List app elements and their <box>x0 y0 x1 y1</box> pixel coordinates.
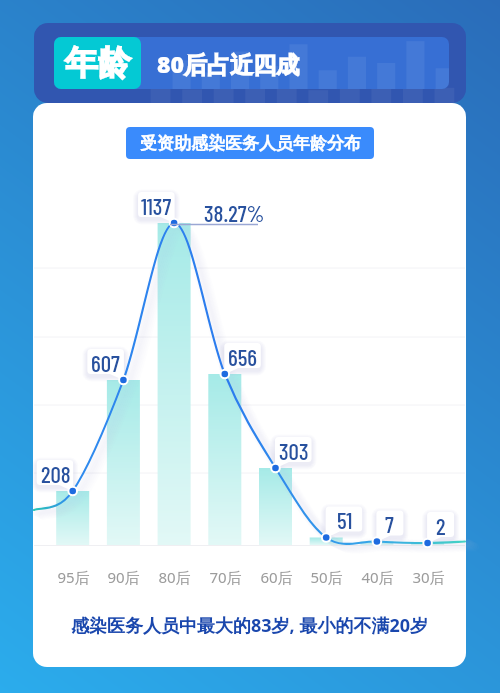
staticText: 2 <box>436 512 446 537</box>
staticText: 607 <box>91 349 120 374</box>
staticText: 303 <box>279 437 309 462</box>
staticText: 95后 <box>57 567 90 587</box>
button[interactable]: 受资助感染医务人员年龄分布 <box>126 127 374 159</box>
staticText: 感染医务人员中最大的83岁, 最小的不满20岁 <box>71 613 428 638</box>
staticText: 656 <box>228 343 257 368</box>
staticText: 40后 <box>361 567 394 587</box>
staticText: 90后 <box>107 567 140 587</box>
staticText: 80后 <box>158 567 191 587</box>
staticText: 38.27% <box>204 199 265 223</box>
staticText: 7 <box>385 510 394 535</box>
button[interactable]: 年龄 <box>54 37 141 89</box>
staticText: 30后 <box>412 567 445 587</box>
staticText: 年龄 <box>65 42 131 84</box>
staticText: 60后 <box>260 567 293 587</box>
staticText: 1137 <box>141 192 172 217</box>
staticText: 70后 <box>209 567 242 587</box>
staticText: 80后占近四成 <box>157 48 299 79</box>
staticText: 51 <box>337 506 353 531</box>
staticText: 208 <box>41 460 71 485</box>
staticText: 50后 <box>310 567 343 587</box>
staticText: 受资助感染医务人员年龄分布 <box>140 133 361 154</box>
